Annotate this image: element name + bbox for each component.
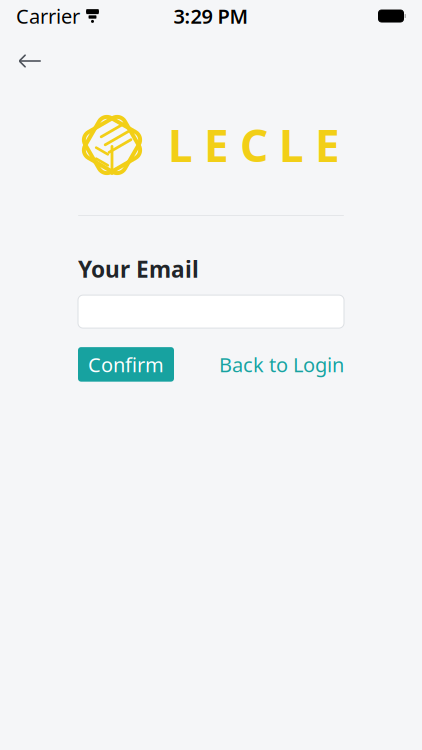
staticText: 3:29 PM bbox=[173, 3, 248, 29]
staticText: Your Email bbox=[78, 254, 199, 284]
staticText: Confirm bbox=[88, 351, 164, 378]
button[interactable]: Back to Login bbox=[219, 347, 344, 382]
button[interactable]: Back bbox=[8, 41, 52, 81]
staticText: Back to Login bbox=[219, 351, 344, 378]
staticText: L E C L E bbox=[168, 116, 340, 174]
button[interactable]: Confirm bbox=[78, 347, 174, 382]
staticText: Carrier bbox=[16, 3, 80, 29]
